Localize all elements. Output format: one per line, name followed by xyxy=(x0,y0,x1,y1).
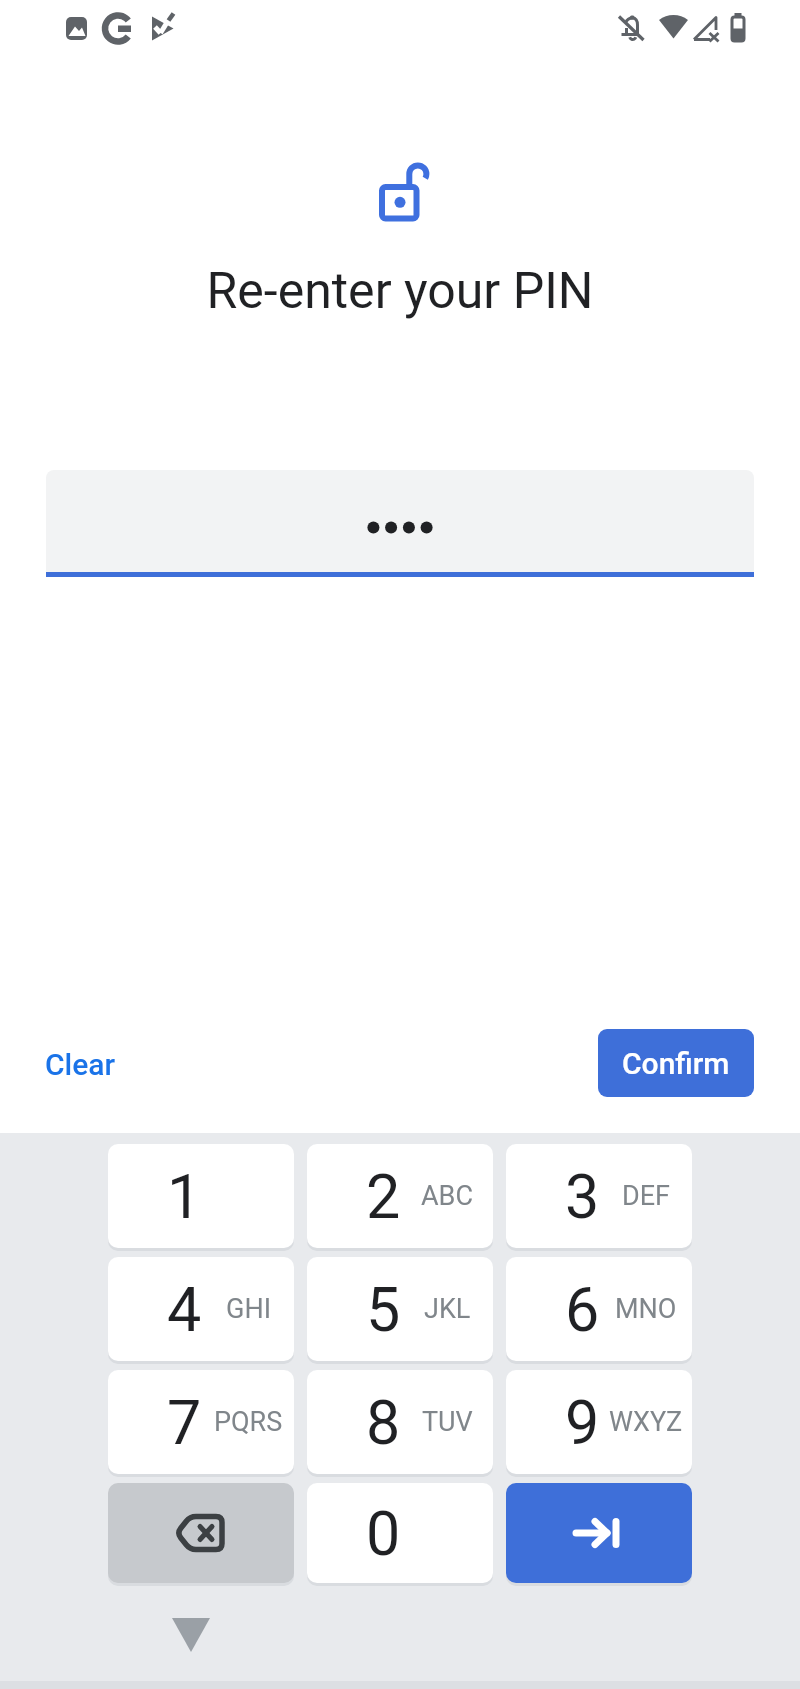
button[interactable]: Confirm xyxy=(598,1029,754,1097)
staticText: Confirm xyxy=(622,1046,730,1081)
staticText: JKL xyxy=(424,1293,471,1325)
button[interactable]: 9 xyxy=(506,1370,692,1474)
staticText: 0 xyxy=(366,1498,401,1569)
button[interactable] xyxy=(108,1483,294,1583)
button[interactable]: 1 xyxy=(108,1144,294,1248)
staticText: Clear xyxy=(45,1047,116,1082)
button[interactable]: 6 xyxy=(506,1257,692,1361)
staticText: TUV xyxy=(422,1406,473,1438)
button[interactable]: 3 xyxy=(506,1144,692,1248)
staticText: 2 xyxy=(366,1161,401,1232)
staticText: Re-enter your PIN xyxy=(0,262,800,321)
staticText: 7 xyxy=(167,1387,202,1458)
staticText: MNO xyxy=(615,1293,677,1325)
button[interactable] xyxy=(506,1483,692,1583)
staticText: PQRS xyxy=(214,1406,283,1438)
staticText: DEF xyxy=(622,1180,670,1212)
button[interactable]: Clear xyxy=(20,1038,140,1090)
staticText: 9 xyxy=(565,1387,600,1458)
button[interactable]: 7 xyxy=(108,1370,294,1474)
button[interactable]: 8 xyxy=(307,1370,493,1474)
staticText: 3 xyxy=(565,1161,600,1232)
staticText: WXYZ xyxy=(609,1406,683,1438)
staticText: ABC xyxy=(421,1180,474,1212)
staticText: 5 xyxy=(366,1274,401,1345)
staticText: 8 xyxy=(366,1387,401,1458)
button[interactable]: 2 xyxy=(307,1144,493,1248)
button[interactable]: 0 xyxy=(307,1483,493,1583)
staticText: 1 xyxy=(167,1161,202,1232)
button[interactable]: 5 xyxy=(307,1257,493,1361)
button[interactable]: 4 xyxy=(108,1257,294,1361)
staticText: 4 xyxy=(167,1274,202,1345)
staticText: GHI xyxy=(226,1293,271,1325)
staticText: 6 xyxy=(565,1274,600,1345)
